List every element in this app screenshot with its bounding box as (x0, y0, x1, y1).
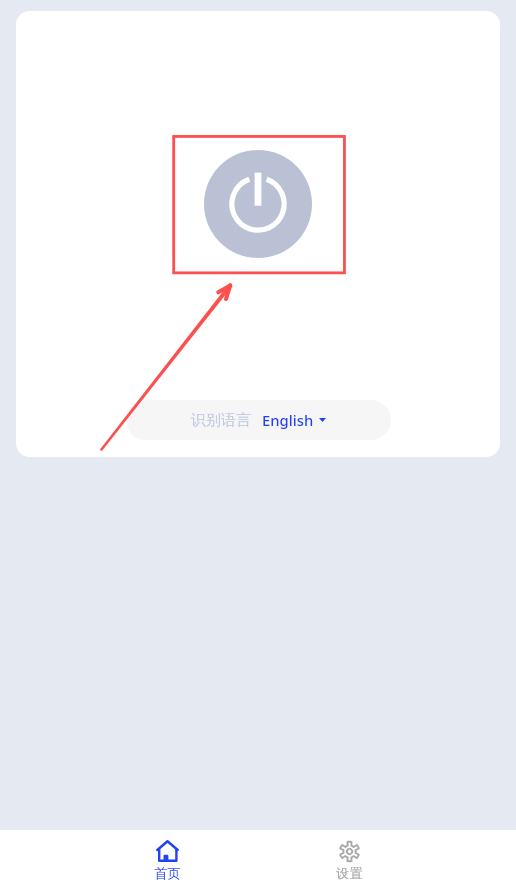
staticText: 识别语言 (191, 411, 251, 430)
staticText: 首页 (154, 865, 181, 882)
button[interactable]: 设置 (258, 830, 440, 890)
button[interactable]: Start recording (204, 150, 312, 258)
staticText: 设置 (336, 865, 363, 882)
button[interactable]: 识别语言 (126, 400, 391, 440)
button[interactable]: 首页 (76, 830, 258, 890)
staticText: English (262, 410, 314, 430)
